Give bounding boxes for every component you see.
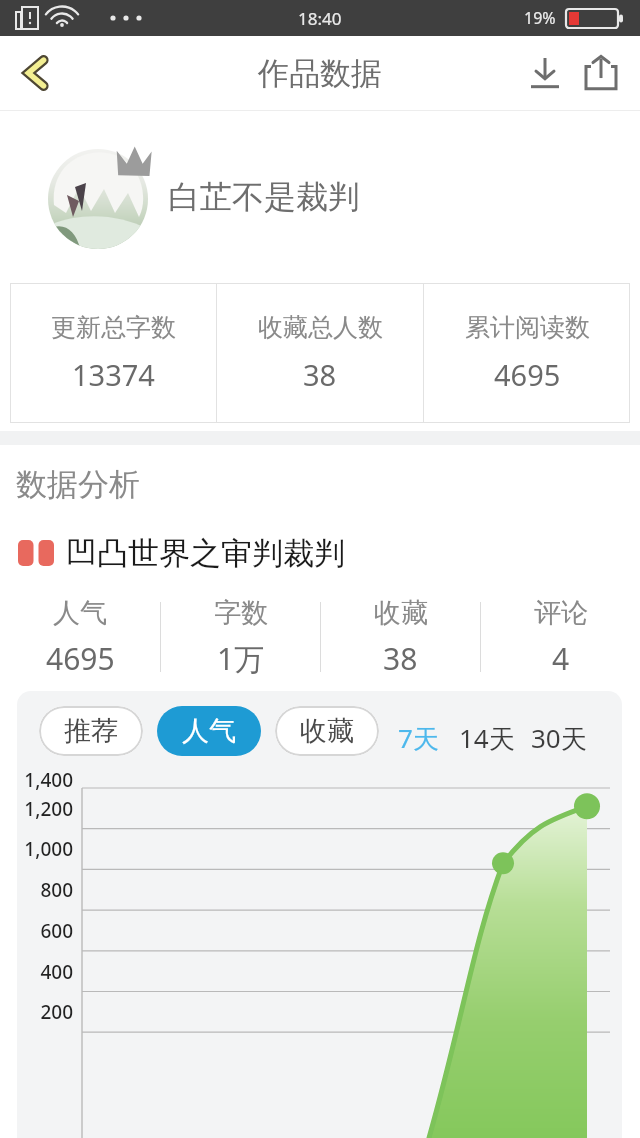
button[interactable]: Back	[6, 43, 66, 103]
staticText: 19%	[524, 7, 556, 29]
staticText: 600	[17, 918, 73, 944]
button[interactable]: Share	[574, 46, 628, 100]
staticText: 评论	[534, 596, 588, 630]
button[interactable]: 30天	[531, 720, 587, 756]
staticText: 4695	[494, 355, 561, 394]
staticText: 人气	[182, 714, 236, 748]
button[interactable]: 累计阅读数	[424, 283, 630, 423]
staticText: 收藏总人数	[258, 312, 383, 343]
staticText: 白芷不是裁判	[168, 177, 360, 217]
staticText: 13374	[72, 355, 155, 394]
button[interactable]: 评论	[481, 596, 640, 679]
staticText: 1,400	[17, 767, 73, 793]
staticText: 4695	[46, 638, 115, 679]
button[interactable]: 14天	[459, 720, 515, 756]
staticText: 更新总字数	[51, 312, 176, 343]
button[interactable]: 收藏总人数	[217, 283, 423, 423]
staticText: 推荐	[64, 714, 118, 748]
staticText: 作品数据	[258, 54, 382, 93]
staticText: 1,200	[17, 796, 73, 822]
staticText: 累计阅读数	[465, 312, 590, 343]
staticText: 400	[17, 959, 73, 985]
staticText: 200	[17, 999, 73, 1025]
button[interactable]: 收藏	[275, 706, 379, 756]
staticText: 1万	[217, 638, 265, 679]
staticText: 凹凸世界之审判裁判	[66, 534, 345, 573]
staticText: 38	[383, 638, 418, 679]
button[interactable]: 收藏	[321, 596, 480, 679]
button[interactable]: 推荐	[39, 706, 143, 756]
staticText: 收藏	[300, 714, 354, 748]
staticText: 人气	[53, 596, 107, 630]
button[interactable]: 人气	[157, 706, 261, 756]
staticText: 1,000	[17, 836, 73, 862]
button[interactable]: 7天	[398, 720, 439, 756]
staticText: 数据分析	[16, 465, 140, 504]
staticText: 收藏	[374, 596, 428, 630]
button[interactable]: Download	[518, 46, 572, 100]
button[interactable]: 人气	[0, 596, 160, 679]
staticText: 800	[17, 877, 73, 903]
button[interactable]: 凹凸世界之审判裁判	[18, 523, 640, 583]
button[interactable]: 白芷不是裁判	[0, 111, 640, 283]
button[interactable]: 字数	[161, 596, 320, 679]
button[interactable]: 更新总字数	[10, 283, 216, 423]
staticText: 38	[303, 355, 337, 394]
staticText: 字数	[214, 596, 268, 630]
staticText: 4	[552, 638, 570, 679]
staticText: 18:40	[298, 7, 342, 30]
